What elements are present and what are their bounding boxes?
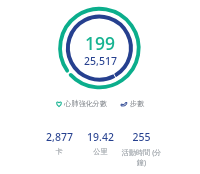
staticText: 2,877 — [46, 130, 73, 144]
staticText: 19.42 — [87, 130, 114, 144]
button[interactable]: 19.42 — [80, 130, 121, 156]
staticText: 活動時間 (分鐘) — [121, 147, 162, 167]
staticText: 公里 — [93, 147, 108, 156]
staticText: 25,517 — [84, 54, 117, 68]
staticText: 心肺強化分數 — [64, 99, 108, 108]
button[interactable]: 255 — [121, 130, 162, 167]
other: Cardio score — [56, 101, 62, 107]
staticText: 255 — [132, 130, 151, 144]
staticText: 卡 — [55, 147, 63, 156]
staticText: 199 — [85, 31, 116, 55]
button[interactable]: Steps — [121, 99, 145, 108]
button[interactable]: Cardio score — [56, 99, 108, 108]
other: Steps — [121, 101, 127, 107]
button[interactable]: 2,877 — [38, 130, 80, 156]
staticText: 步數 — [130, 99, 145, 108]
